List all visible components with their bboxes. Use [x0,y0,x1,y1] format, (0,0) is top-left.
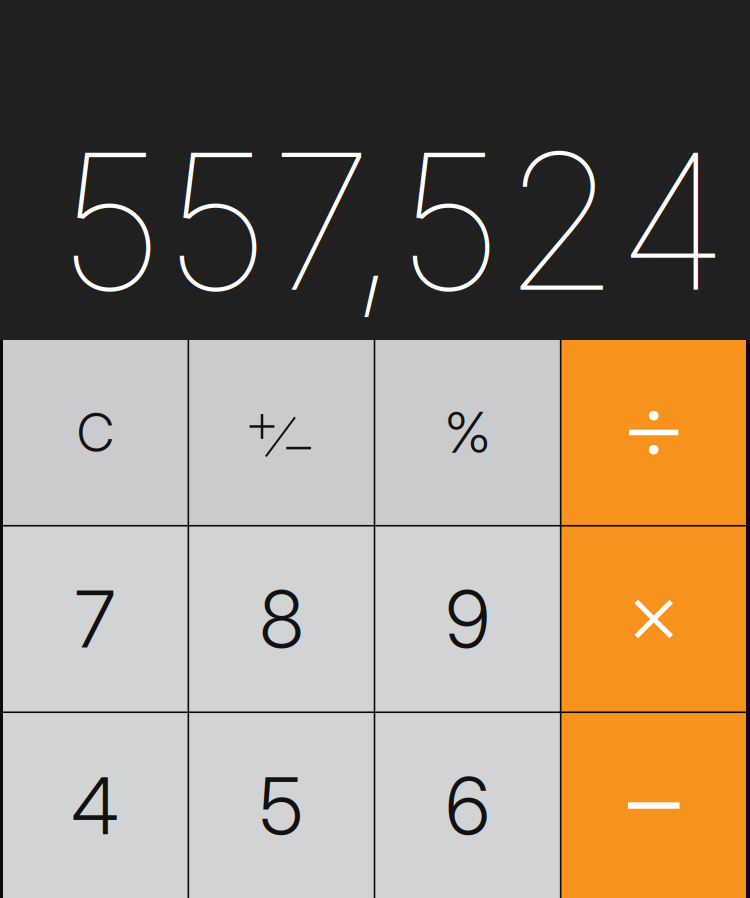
staticText: 557,524 [58,107,729,335]
button[interactable]: 7 [3,526,188,711]
staticText: 5 [259,758,303,853]
button[interactable]: % [375,340,560,525]
staticText: 6 [446,758,490,853]
staticText: % [445,399,491,466]
staticText: 7 [75,571,116,667]
staticText: 9 [446,571,490,667]
button[interactable]: 8 [189,526,374,711]
staticText: C [77,400,114,465]
button[interactable]: C [3,340,188,525]
button[interactable]: 6 [375,713,560,898]
button[interactable]: 5 [189,713,374,898]
button[interactable]: Multiply [561,526,746,711]
button[interactable]: Subtract [561,713,746,898]
staticText: 4 [71,758,119,853]
button[interactable]: Divide [561,340,746,525]
button[interactable]: Toggle sign [189,340,374,525]
button[interactable]: 9 [375,526,560,711]
button[interactable]: 4 [3,713,188,898]
staticText: 8 [259,571,303,667]
